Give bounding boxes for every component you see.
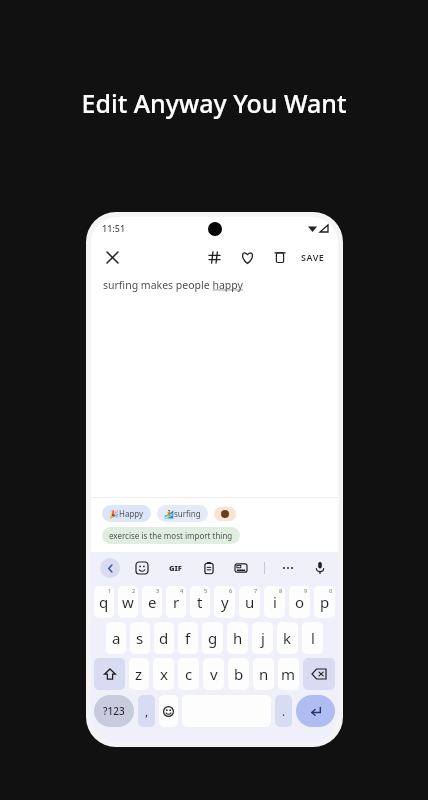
button[interactable]: Enter [296, 695, 335, 727]
staticText: d [159, 628, 169, 648]
button[interactable]: f [178, 622, 198, 654]
button[interactable]: . [275, 695, 292, 727]
button[interactable]: SAVE [296, 246, 330, 268]
button[interactable]: d [154, 622, 174, 654]
staticText: u [245, 592, 255, 612]
button[interactable]: k [277, 622, 298, 654]
button[interactable]: v [203, 658, 224, 690]
staticText: k [283, 628, 292, 648]
button[interactable]: 🏄surfing [157, 505, 208, 522]
staticText: SAVE [301, 251, 325, 263]
button[interactable]: u [239, 586, 260, 618]
staticText: 🎉Happy [109, 508, 144, 519]
staticText: GIF [169, 563, 182, 573]
button[interactable]: q [94, 586, 114, 618]
button[interactable]: 🎉Happy [102, 505, 151, 522]
staticText: m [281, 664, 296, 684]
staticText: o [295, 592, 305, 612]
button[interactable]: Shift [94, 658, 125, 690]
button[interactable]: j [252, 622, 273, 654]
button[interactable]: t [190, 586, 210, 618]
staticText: s [136, 628, 144, 648]
button[interactable]: a [106, 622, 126, 654]
staticText: l [311, 628, 315, 648]
staticText: r [173, 592, 180, 612]
staticText: n [259, 664, 269, 684]
button[interactable]: Stickers [133, 559, 151, 577]
button[interactable]: p [314, 586, 335, 618]
button[interactable]: h [227, 622, 248, 654]
button[interactable]: Back [100, 558, 120, 578]
button[interactable]: w [118, 586, 138, 618]
button[interactable]: i [264, 586, 285, 618]
button[interactable]: More options [279, 559, 297, 577]
staticText: y [221, 592, 229, 612]
staticText: . [282, 703, 286, 719]
staticText: 6 [229, 587, 233, 594]
staticText: i [273, 592, 277, 612]
button[interactable]: Voice input [311, 559, 329, 577]
button[interactable]: Tags [201, 244, 227, 270]
staticText: g [208, 628, 218, 648]
staticText: p [320, 592, 330, 612]
button[interactable]: ?123 [94, 695, 134, 727]
button[interactable]: o [289, 586, 310, 618]
staticText: 8 [279, 587, 283, 594]
button[interactable]: Emoji [159, 695, 178, 727]
staticText: h [233, 628, 243, 648]
button[interactable]: m [278, 658, 299, 690]
staticText: ?123 [103, 704, 125, 718]
staticText: 11:51 [102, 222, 126, 234]
button[interactable]: Backspace [303, 658, 335, 690]
staticText: 9 [304, 587, 308, 594]
button[interactable]: Clipboard [200, 559, 218, 577]
button[interactable]: , [138, 695, 155, 727]
staticText: z [135, 664, 143, 684]
button[interactable]: Close [99, 244, 125, 270]
staticText: j [261, 628, 265, 648]
staticText: 7 [254, 587, 258, 594]
staticText: 🏄surfing [164, 508, 201, 519]
staticText: f [185, 628, 191, 648]
staticText: a [112, 628, 121, 648]
button[interactable]: Translate [232, 559, 250, 577]
button[interactable]: exercise is the most import thing [102, 527, 240, 544]
button[interactable]: y [214, 586, 235, 618]
staticText: 2 [132, 587, 136, 594]
button[interactable]: n [253, 658, 274, 690]
staticText: t [197, 592, 203, 612]
button[interactable]: e [142, 586, 162, 618]
button[interactable]: Delete [267, 244, 293, 270]
button[interactable]: l [302, 622, 323, 654]
staticText: w [122, 592, 134, 612]
staticText: 0 [329, 587, 333, 594]
button[interactable]: Favorite [234, 244, 260, 270]
staticText: c [185, 664, 193, 684]
staticText: 1 [108, 587, 112, 594]
button[interactable]: r [166, 586, 186, 618]
button[interactable]: z [129, 658, 149, 690]
button[interactable]: c [178, 658, 199, 690]
staticText: , [145, 703, 149, 719]
staticText: exercise is the most import thing [109, 530, 233, 541]
staticText: surfing makes people happy [103, 278, 243, 292]
button[interactable]: GIF [164, 557, 186, 579]
button[interactable]: g [202, 622, 223, 654]
button[interactable]: s [130, 622, 150, 654]
staticText: 5 [204, 587, 208, 594]
button[interactable]: x [153, 658, 174, 690]
staticText: Edit Anyway You Want [34, 86, 394, 120]
staticText: b [234, 664, 244, 684]
staticText: v [210, 664, 218, 684]
staticText: q [99, 592, 109, 612]
staticText: x [160, 664, 168, 684]
button[interactable]: b [228, 658, 249, 690]
staticText: e [148, 592, 157, 612]
staticText: 3 [156, 587, 160, 594]
staticText: 4 [180, 587, 184, 594]
button[interactable]: Emoji tag [214, 507, 236, 521]
